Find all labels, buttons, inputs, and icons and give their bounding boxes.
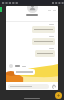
button[interactable]	[32, 38, 55, 45]
button[interactable]	[32, 26, 55, 33]
button[interactable]	[14, 69, 35, 75]
button[interactable]	[8, 84, 49, 89]
button[interactable]	[35, 50, 55, 57]
button[interactable]: New message	[55, 92, 62, 99]
button[interactable]: Profile photo	[27, 6, 38, 13]
button[interactable]: Menu	[48, 9, 51, 12]
button[interactable]: Menu	[53, 9, 56, 12]
button[interactable]: Attach	[51, 84, 56, 89]
button[interactable]	[9, 64, 26, 68]
